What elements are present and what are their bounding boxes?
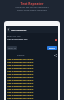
staticText: I am in love with you I am in — [7, 61, 34, 64]
staticText: I am in love with you I am in — [7, 79, 34, 82]
staticText: I am in love with you I am in — [7, 64, 34, 67]
staticText: REPEAT — [49, 47, 55, 49]
staticText: I am in love with you I am in — [7, 67, 34, 70]
staticText: I am in love with you I am in — [7, 58, 34, 61]
staticText: Enter Your Text — [7, 35, 21, 38]
staticText: I am in love with you I am in — [7, 76, 34, 79]
button[interactable]: REPEAT — [47, 46, 57, 50]
staticText: I am in love with you — [7, 38, 28, 41]
other: Back — [7, 28, 10, 31]
staticText: I am in love with you I am in — [7, 82, 34, 85]
staticText: I am in love with you I am in — [7, 91, 34, 94]
staticText: Preview — [17, 54, 25, 57]
staticText: I am in love with you I am in — [7, 94, 34, 97]
staticText: I am in love with you I am in — [7, 97, 34, 100]
staticText: I am in love with you I am in — [7, 70, 34, 73]
staticText: Times : 50 — [8, 47, 16, 49]
staticText: I am in love with you I am in — [7, 73, 34, 76]
button[interactable]: Clear text — [55, 39, 57, 41]
staticText: I am in love with you I am in — [7, 88, 34, 91]
button[interactable]: Share — [54, 54, 57, 57]
button[interactable]: Back — [6, 26, 58, 33]
staticText: Using this app you can repeated a letter… — [2, 6, 62, 11]
staticText: Text Repeater — [0, 1, 64, 5]
staticText: Text Repeater — [11, 28, 27, 31]
button[interactable]: Times : 50 — [7, 46, 17, 50]
staticText: I am in love with you I am in — [7, 85, 34, 88]
